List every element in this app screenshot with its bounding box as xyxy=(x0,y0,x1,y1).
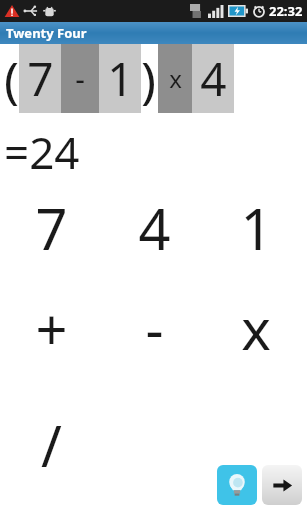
staticText: 1 xyxy=(240,190,273,266)
staticText: =24 xyxy=(4,122,80,178)
staticText: x xyxy=(169,62,182,95)
button[interactable]: 1 xyxy=(99,44,141,113)
button[interactable]: x xyxy=(205,278,307,378)
staticText: Twenty Four xyxy=(6,24,87,42)
button[interactable]: Next xyxy=(262,465,302,505)
button[interactable]: / xyxy=(0,378,103,512)
staticText: 22:32 xyxy=(269,2,303,20)
button[interactable]: 7 xyxy=(0,178,103,278)
button[interactable]: - xyxy=(103,278,205,378)
staticText: 1 xyxy=(107,47,134,110)
staticText: ) xyxy=(141,45,156,113)
staticText: + xyxy=(35,290,68,366)
staticText: - xyxy=(75,58,85,99)
staticText: 4 xyxy=(138,190,171,266)
button[interactable]: 4 xyxy=(103,178,205,278)
button[interactable]: 1 xyxy=(205,178,307,278)
button[interactable]: Hint xyxy=(217,465,257,505)
staticText: x xyxy=(241,290,271,366)
button[interactable]: x xyxy=(158,44,192,113)
staticText: - xyxy=(145,290,164,366)
button[interactable]: - xyxy=(61,44,99,113)
staticText: 4 xyxy=(200,47,227,110)
button[interactable]: 7 xyxy=(19,44,61,113)
button[interactable]: 4 xyxy=(192,44,234,113)
staticText: 7 xyxy=(27,47,54,110)
staticText: / xyxy=(41,407,62,483)
staticText: 7 xyxy=(35,190,68,266)
staticText: ( xyxy=(4,45,19,113)
button[interactable]: + xyxy=(0,278,103,378)
